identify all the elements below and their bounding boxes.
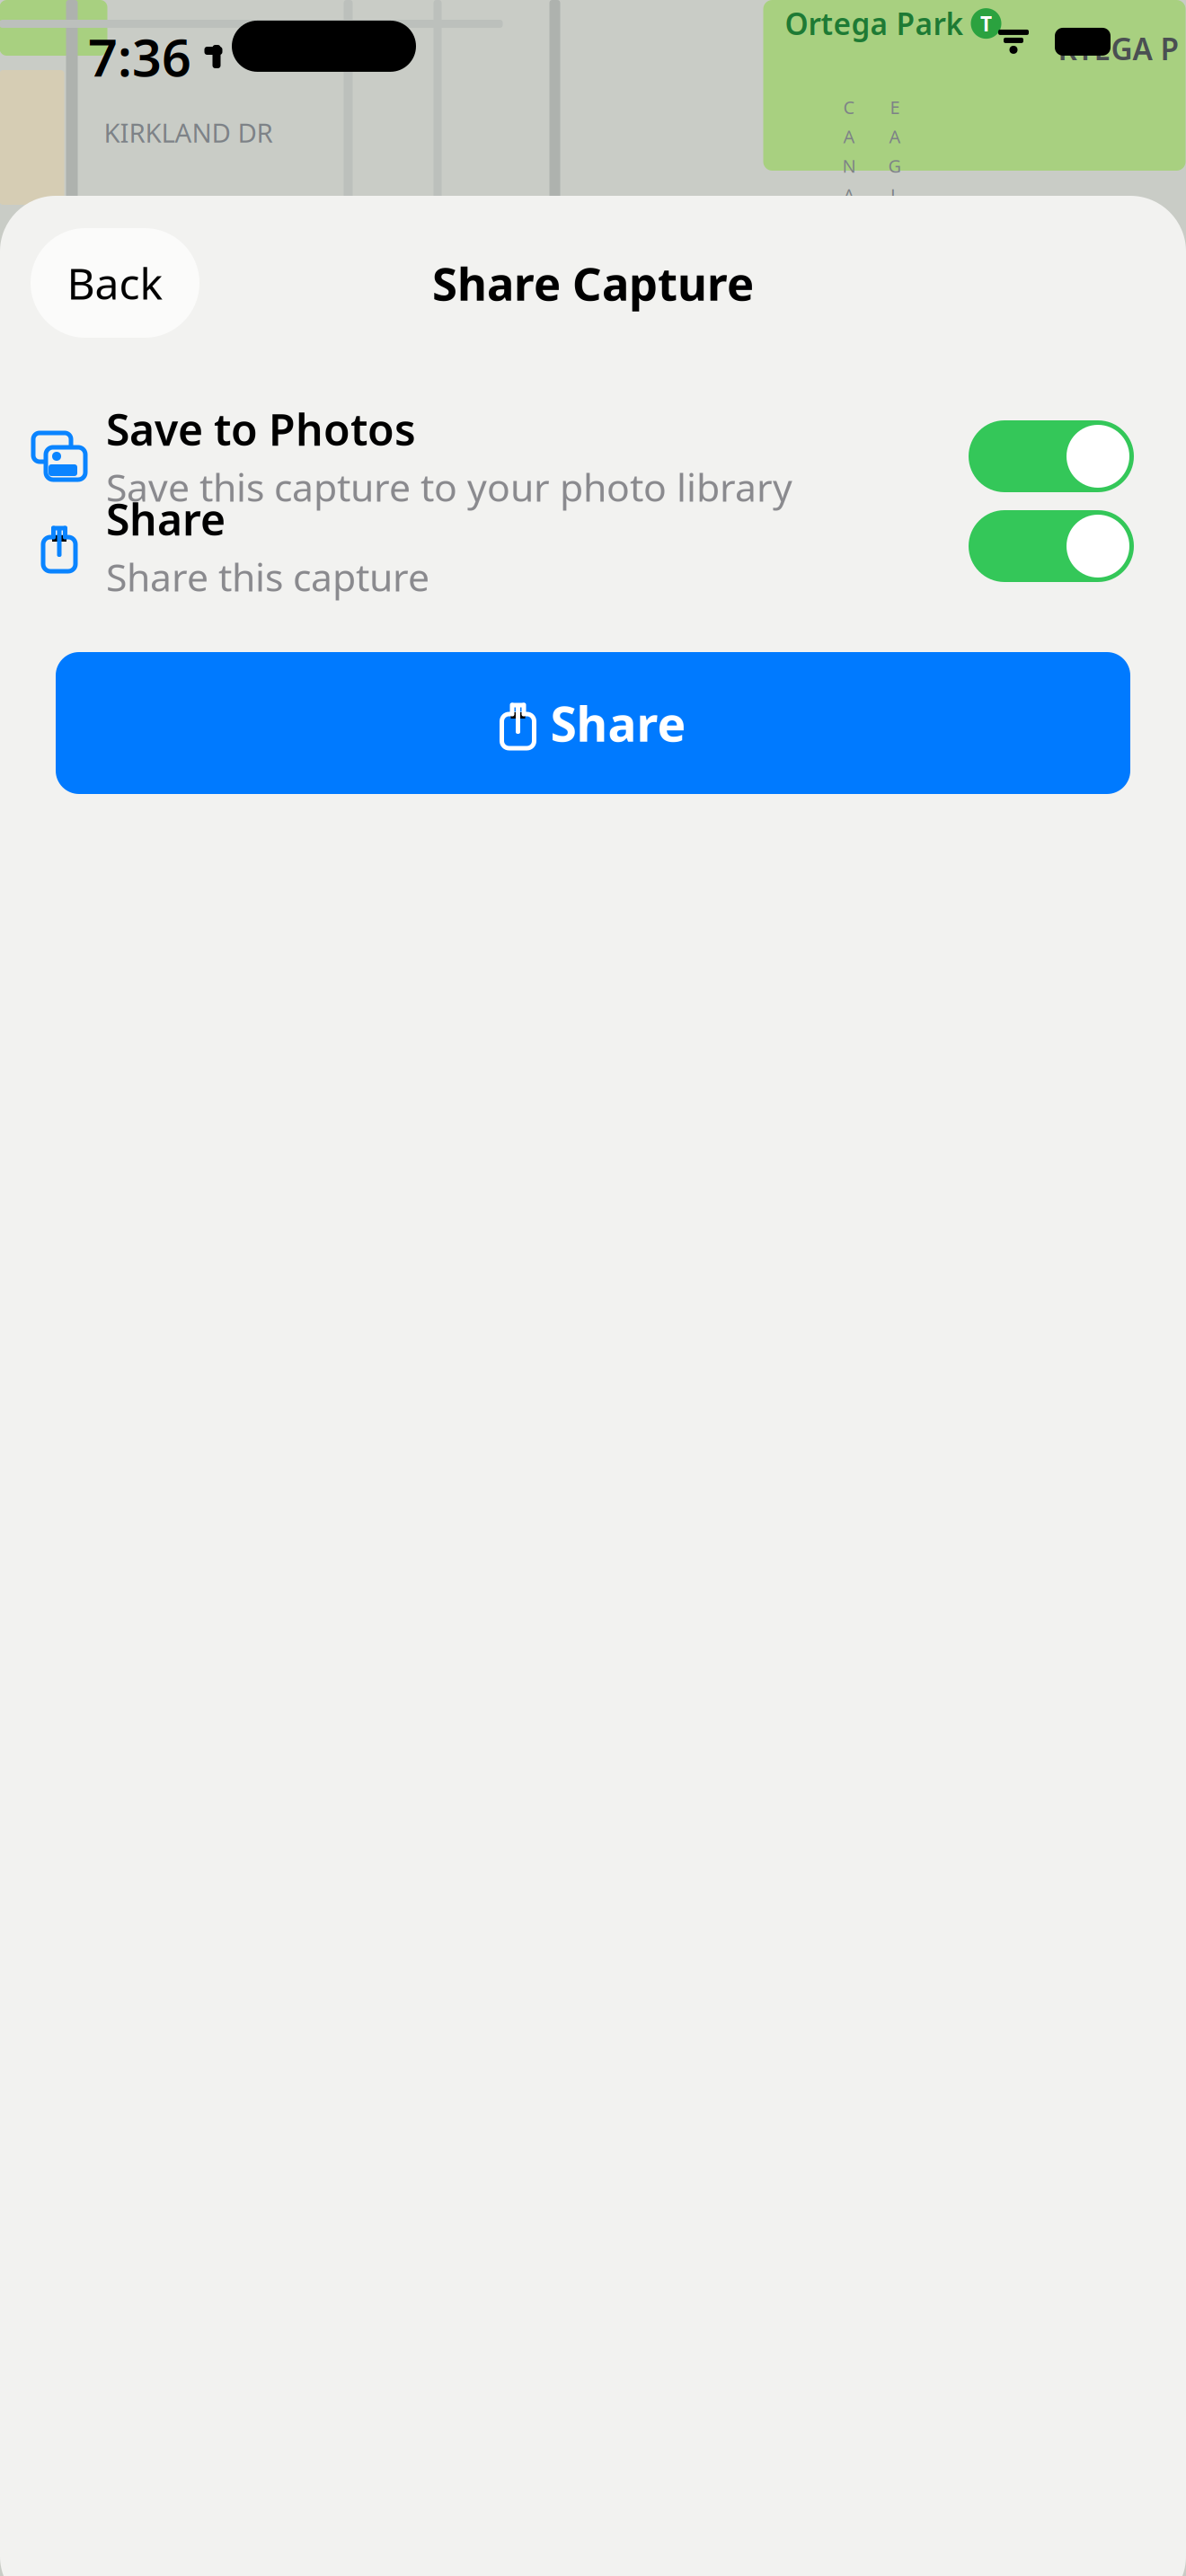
staticText: Share Capture [432,253,754,313]
staticText: A [889,124,901,148]
button[interactable]: Share [56,652,1130,794]
staticText: N [842,154,856,178]
staticText: Share [550,691,686,755]
staticText: G [888,154,902,178]
staticText: Save this capture to your photo library [106,461,792,512]
staticText: 7:36 [88,22,191,91]
staticText: C [843,95,855,119]
staticText: Save to Photos [106,400,416,458]
staticText: RTEGA P [1058,29,1179,69]
staticText: T [980,10,992,37]
staticText: A [843,183,855,207]
staticText: Share [106,490,226,547]
staticText: Share this capture [106,551,429,602]
staticText: Ortega Park [785,4,964,43]
staticText: Back [67,254,163,311]
button[interactable]: Save to Photos [0,411,1186,501]
button[interactable]: Back [31,228,199,338]
staticText: L [890,183,899,207]
button[interactable]: Share [0,501,1186,591]
staticText: E [890,95,900,119]
staticText: A [843,124,855,148]
staticText: KIRKLAND DR [104,115,273,150]
